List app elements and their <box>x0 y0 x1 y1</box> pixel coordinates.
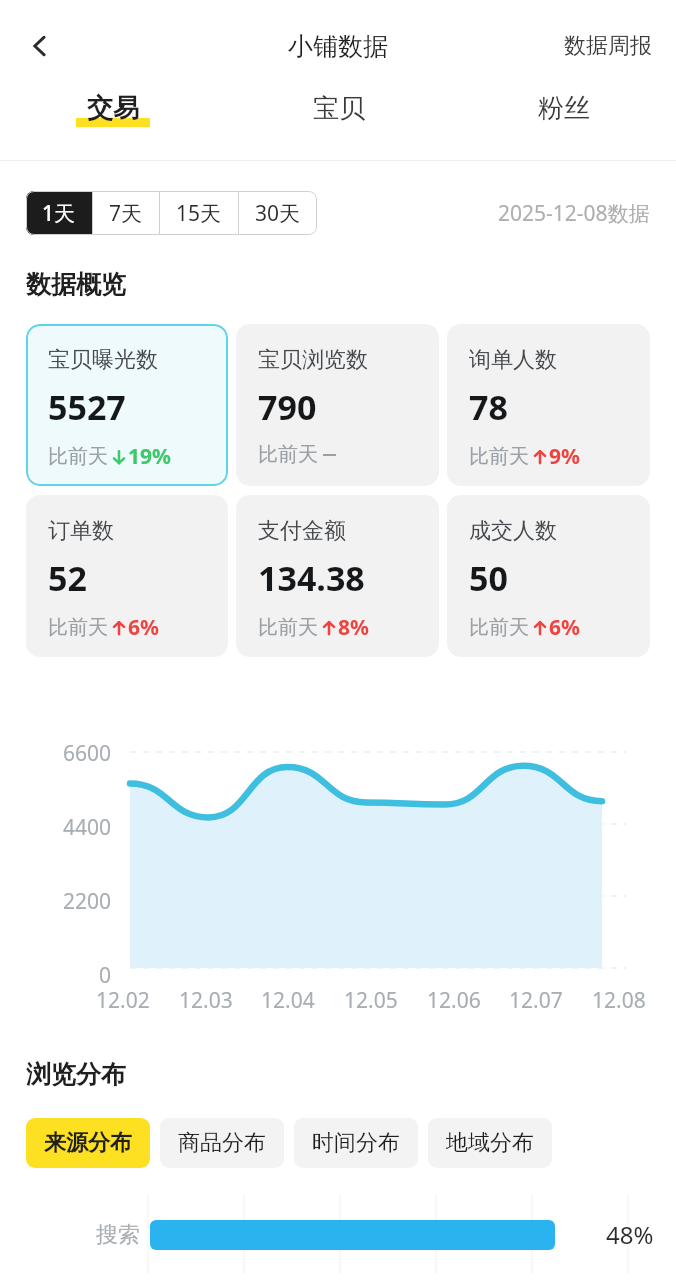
staticText: 8% <box>338 613 369 642</box>
staticText: 比前天 <box>48 444 108 469</box>
button[interactable]: 数据周报 <box>564 32 652 60</box>
staticText: 9% <box>549 442 580 471</box>
staticText: 2200 <box>63 887 112 916</box>
staticText: 成交人数 <box>469 517 557 545</box>
button[interactable]: 粉丝 <box>451 92 676 127</box>
button[interactable]: 来源分布 <box>26 1118 150 1168</box>
staticText: 15天 <box>176 199 222 228</box>
staticText: 7天 <box>109 199 143 228</box>
staticText: 比前天 <box>48 615 108 640</box>
staticText: 宝贝浏览数 <box>258 346 368 374</box>
staticText: 790 <box>258 384 317 430</box>
staticText: 小铺数据 <box>288 31 388 62</box>
staticText: 78 <box>469 384 508 430</box>
staticText: 支付金额 <box>258 517 346 545</box>
staticText: 交易 <box>87 92 139 125</box>
button[interactable]: 15天 <box>160 191 238 235</box>
button[interactable]: 交易 <box>0 92 226 127</box>
staticText: 6% <box>549 613 580 642</box>
staticText: 50 <box>469 555 508 601</box>
button[interactable]: 订单数 <box>26 495 228 657</box>
staticText: 2025-12-08数据 <box>498 199 650 228</box>
staticText: 12.05 <box>344 986 398 1015</box>
staticText: 52 <box>48 555 87 601</box>
staticText: 比前天 <box>258 442 318 467</box>
staticText: 12.07 <box>509 986 563 1015</box>
button[interactable]: 商品分布 <box>160 1118 284 1168</box>
staticText: 粉丝 <box>538 92 590 125</box>
staticText: 宝贝曝光数 <box>48 346 158 374</box>
button[interactable]: 宝贝浏览数 <box>236 324 439 486</box>
button[interactable]: 宝贝 <box>226 92 451 127</box>
staticText: 数据周报 <box>564 32 652 60</box>
staticText: 比前天 <box>469 615 529 640</box>
staticText: 订单数 <box>48 517 114 545</box>
staticText: 来源分布 <box>44 1129 132 1157</box>
staticText: 搜索 <box>96 1221 140 1249</box>
button[interactable]: 1天 <box>26 191 92 235</box>
button[interactable]: 成交人数 <box>447 495 650 657</box>
staticText: 134.38 <box>258 555 365 601</box>
staticText: 19% <box>128 442 171 471</box>
staticText: 地域分布 <box>446 1129 534 1157</box>
button[interactable]: 地域分布 <box>428 1118 552 1168</box>
staticText: 1天 <box>42 199 76 228</box>
button[interactable]: 宝贝曝光数 <box>26 324 228 486</box>
button[interactable]: 询单人数 <box>447 324 650 486</box>
button[interactable]: 7天 <box>93 191 159 235</box>
staticText: 12.08 <box>592 986 646 1015</box>
staticText: 商品分布 <box>178 1129 266 1157</box>
staticText: 12.03 <box>179 986 233 1015</box>
staticText: 12.04 <box>261 986 315 1015</box>
staticText: 比前天 <box>258 615 318 640</box>
staticText: 0 <box>99 961 112 990</box>
staticText: 12.06 <box>427 986 481 1015</box>
staticText: 时间分布 <box>312 1129 400 1157</box>
staticText: 6600 <box>63 739 112 768</box>
staticText: 30天 <box>255 199 301 228</box>
button[interactable]: Back <box>14 20 66 72</box>
staticText: 5527 <box>48 384 126 430</box>
staticText: 宝贝 <box>313 92 365 125</box>
staticText: 12.02 <box>96 986 150 1015</box>
staticText: 4400 <box>63 813 112 842</box>
staticText: 48% <box>606 1218 654 1251</box>
staticText: 询单人数 <box>469 346 557 374</box>
staticText: 浏览分布 <box>26 1059 126 1090</box>
button[interactable]: 30天 <box>239 191 317 235</box>
button[interactable]: 支付金额 <box>236 495 439 657</box>
staticText: 数据概览 <box>26 269 126 300</box>
staticText: 6% <box>128 613 159 642</box>
button[interactable]: 时间分布 <box>294 1118 418 1168</box>
staticText: 比前天 <box>469 444 529 469</box>
